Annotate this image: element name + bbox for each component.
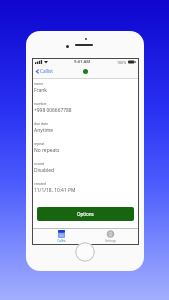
- staticText: Options: [77, 211, 94, 217]
- button[interactable]: name: [32, 81, 139, 101]
- staticText: Callist: [40, 68, 53, 74]
- staticText: number: [34, 101, 47, 106]
- button[interactable]: due date: [32, 121, 139, 141]
- button[interactable]: number: [32, 101, 139, 121]
- staticText: repeat: [34, 141, 45, 146]
- staticText: due date: [34, 121, 49, 126]
- staticText: name: [34, 81, 44, 86]
- staticText: 100%: [117, 60, 127, 65]
- staticText: Disabled: [34, 167, 54, 174]
- staticText: 9:41 AM: [74, 59, 91, 65]
- staticText: 11/1/18, 10:41 PM: [34, 187, 76, 194]
- button[interactable]: Settings: [90, 229, 130, 245]
- button[interactable]: Callist: [36, 68, 53, 74]
- button[interactable]: created: [32, 181, 139, 201]
- staticText: Settings: [105, 239, 116, 243]
- staticText: sound: [34, 161, 44, 166]
- button[interactable]: Callist: [41, 229, 81, 245]
- button[interactable]: Options: [37, 207, 134, 221]
- staticText: +998 006667788: [34, 107, 72, 114]
- staticText: created: [34, 181, 46, 186]
- button[interactable]: repeat: [32, 141, 139, 161]
- button[interactable]: Home: [75, 242, 95, 262]
- staticText: No repeats: [34, 147, 60, 154]
- staticText: Anytime: [34, 127, 54, 134]
- button[interactable]: sound: [32, 161, 139, 181]
- staticText: Frank: [34, 87, 47, 94]
- staticText: Callist: [57, 239, 66, 243]
